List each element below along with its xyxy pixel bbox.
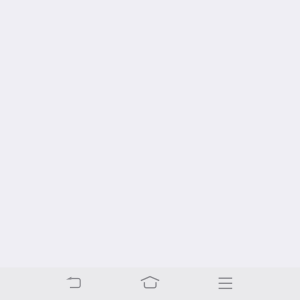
button[interactable]: Recent apps [188,268,264,300]
button[interactable]: Home [112,268,188,300]
button[interactable]: Back [36,268,112,300]
